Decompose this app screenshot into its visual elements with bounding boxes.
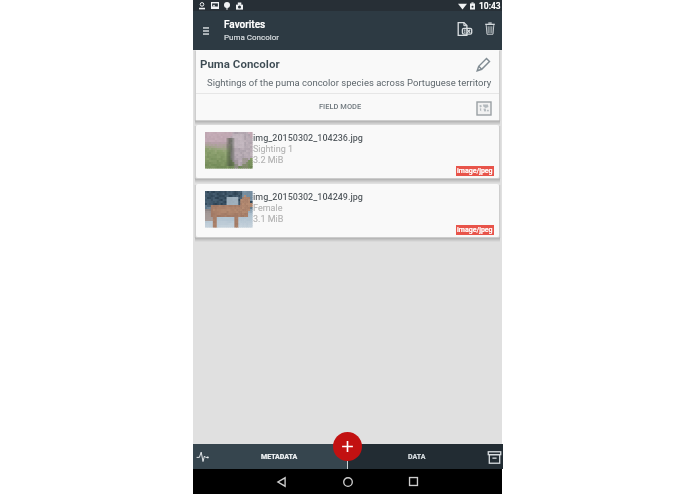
button[interactable]: Recent apps — [403, 471, 424, 492]
staticText: Puma Concolor — [224, 33, 279, 42]
staticText: DATA — [408, 453, 426, 461]
button[interactable]: METADATA — [229, 444, 329, 469]
staticText: Female — [253, 203, 283, 214]
button[interactable]: img_20150302_104236.jpg — [196, 125, 499, 178]
staticText: 3.1 MiB — [253, 214, 284, 225]
staticText: img_20150302_104236.jpg — [253, 133, 363, 144]
button[interactable]: Archive — [484, 445, 505, 470]
staticText: 10:43 — [479, 1, 501, 11]
button[interactable]: Back — [271, 471, 292, 492]
button[interactable]: img_20150302_104249.jpg — [196, 184, 499, 237]
staticText: FIELD MODE — [319, 102, 362, 111]
button[interactable]: Show map — [471, 96, 497, 121]
button[interactable]: FIELD MODE — [189, 94, 492, 119]
button[interactable]: Open navigation menu — [193, 18, 218, 43]
staticText: Puma Concolor — [200, 57, 280, 70]
button[interactable]: Home — [337, 471, 358, 492]
button[interactable]: Delete — [477, 16, 502, 41]
staticText: img_20150302_104249.jpg — [253, 192, 363, 203]
staticText: image/jpeg — [457, 226, 493, 234]
staticText: 3.2 MiB — [253, 155, 284, 166]
staticText: METADATA — [261, 453, 298, 461]
staticText: image/jpeg — [457, 167, 493, 175]
staticText: Sightings of the puma concolor species a… — [207, 77, 492, 88]
button[interactable]: DATA — [367, 444, 467, 469]
button[interactable]: Add — [333, 432, 362, 461]
button[interactable]: Export — [452, 16, 477, 41]
staticText: Sighting 1 — [253, 144, 293, 155]
button[interactable]: Edit — [470, 51, 496, 77]
staticText: Favorites — [224, 19, 266, 31]
button[interactable]: Activity — [193, 444, 213, 469]
